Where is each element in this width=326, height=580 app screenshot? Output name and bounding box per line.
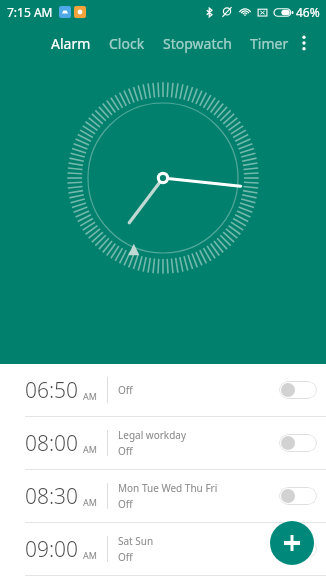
staticText: Off [118, 383, 133, 397]
button[interactable]: Timer [249, 30, 290, 57]
staticText: 08:30 [25, 482, 79, 511]
button[interactable]: 08:30 [0, 470, 326, 522]
button[interactable]: Toggle alarm 08:30 [279, 487, 317, 505]
staticText: 09:00 [25, 535, 79, 564]
staticText: AM [83, 549, 97, 561]
button[interactable]: Stopwatch [162, 30, 233, 57]
button[interactable]: Toggle alarm 06:50 [279, 381, 317, 399]
button[interactable]: More options [290, 29, 318, 57]
staticText: Mon Tue Wed Thu Fri [118, 481, 218, 495]
staticText: 7:15 AM [7, 4, 53, 20]
staticText: Clock [109, 34, 145, 53]
staticText: Alarm [51, 34, 91, 53]
button[interactable]: 09:00 [0, 523, 326, 575]
button[interactable]: Alarm [50, 30, 92, 57]
staticText: Legal workday [118, 428, 187, 442]
staticText: 06:50 [25, 376, 79, 405]
staticText: AM [83, 443, 97, 455]
button[interactable]: Add alarm [270, 521, 314, 565]
button[interactable]: 08:00 [0, 417, 326, 469]
staticText: AM [83, 390, 97, 402]
button[interactable]: Toggle alarm 09:00 [279, 540, 317, 558]
staticText: Off [118, 497, 133, 511]
staticText: AM [83, 496, 97, 508]
staticText: Off [118, 444, 133, 458]
button[interactable]: Clock [108, 30, 146, 57]
button[interactable]: 06:50 [0, 364, 326, 416]
staticText: 46% [296, 4, 320, 20]
staticText: Stopwatch [163, 34, 232, 53]
button[interactable]: Toggle alarm 08:00 [279, 434, 317, 452]
staticText: Sat Sun [118, 534, 154, 548]
staticText: 08:00 [25, 429, 79, 458]
staticText: Timer [250, 34, 289, 53]
staticText: Off [118, 550, 133, 564]
